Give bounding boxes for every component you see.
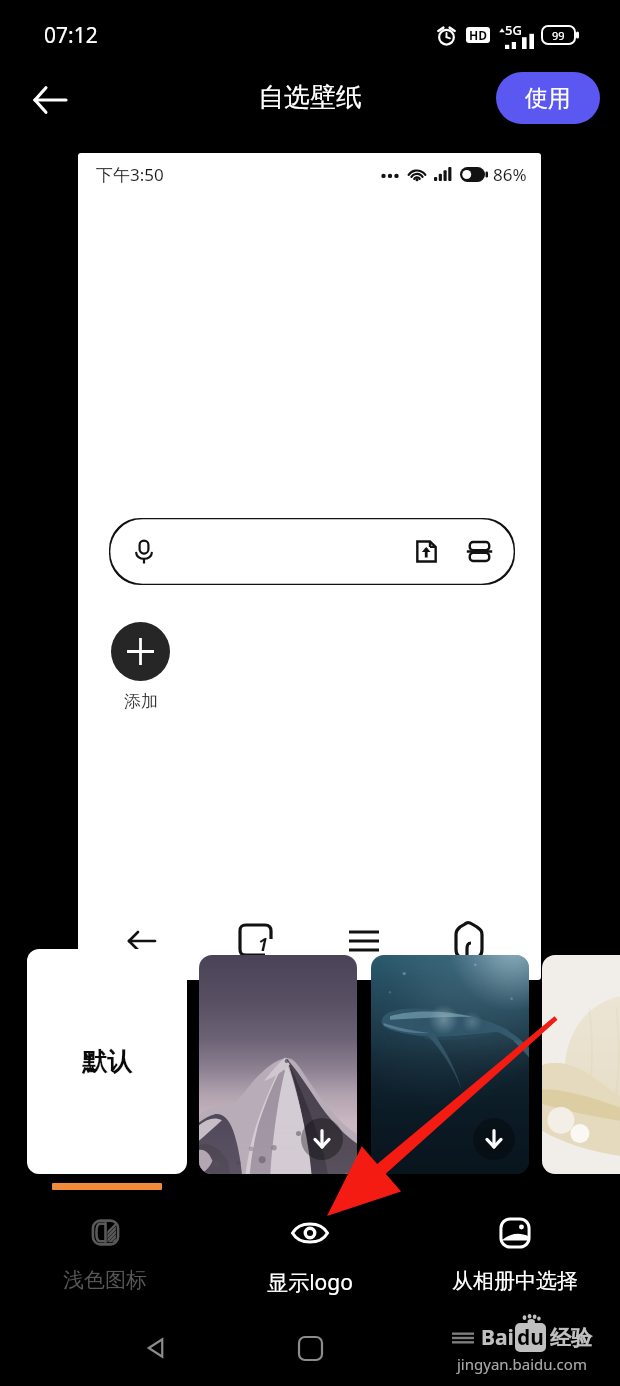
button[interactable]: Back <box>134 1326 178 1370</box>
staticText: 07:12 <box>44 21 98 50</box>
staticText: 从相册中选择 <box>452 1268 578 1294</box>
button[interactable]: Add <box>111 622 170 681</box>
staticText: 1 <box>258 932 268 957</box>
button[interactable]: 默认 <box>27 949 187 1174</box>
button[interactable]: Download <box>473 1118 515 1160</box>
button[interactable]: Home <box>288 1326 332 1370</box>
staticText: jingyan.baidu.com <box>457 1354 587 1374</box>
staticText: HD <box>469 27 487 43</box>
button[interactable]: Download <box>199 955 357 1174</box>
button[interactable]: Back <box>26 76 74 124</box>
button[interactable]: 从相册中选择 <box>415 1208 615 1300</box>
staticText: 99 <box>552 28 565 43</box>
staticText: Bai <box>481 1323 514 1352</box>
staticText: 下午3:50 <box>96 163 164 186</box>
staticText: 86% <box>493 163 527 186</box>
staticText: 自选壁纸 <box>258 81 362 114</box>
staticText: 默认 <box>82 1046 132 1077</box>
button[interactable] <box>542 955 620 1174</box>
staticText: 经验 <box>550 1325 592 1351</box>
staticText: 显示logo <box>267 1268 353 1297</box>
button[interactable] <box>109 518 515 585</box>
button[interactable]: 显示logo <box>210 1208 410 1303</box>
staticText: 浅色图标 <box>63 1267 147 1293</box>
staticText: 5G <box>505 21 522 39</box>
button[interactable]: Download <box>371 955 529 1174</box>
button[interactable]: 使用 <box>496 72 600 124</box>
button[interactable]: Download <box>301 1118 343 1160</box>
staticText: 添加 <box>124 691 158 712</box>
staticText: 使用 <box>525 84 571 113</box>
button[interactable]: 浅色图标 <box>5 1208 205 1299</box>
staticText: du <box>517 1323 544 1352</box>
